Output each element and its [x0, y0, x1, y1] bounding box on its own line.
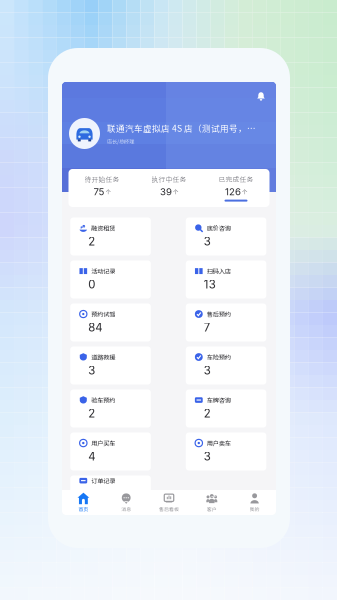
button[interactable]: 车牌咨询 — [186, 389, 266, 427]
button[interactable]: 执行中任务 — [135, 169, 202, 207]
staticText: 售后预约 — [207, 309, 231, 319]
staticText: 已完成任务 — [218, 174, 253, 184]
staticText: 126 — [225, 186, 241, 198]
staticText: 2 — [88, 235, 95, 248]
staticText: 底价咨询 — [207, 223, 231, 233]
staticText: 7 — [204, 321, 210, 334]
button[interactable]: 活动记录 — [70, 260, 151, 298]
button[interactable]: 售后预约 — [186, 303, 266, 341]
staticText: 75 — [93, 186, 104, 198]
staticText: 84 — [88, 321, 102, 334]
staticText: 个 — [105, 188, 110, 196]
button[interactable]: 预约试驾 — [70, 303, 151, 341]
staticText: 首页 — [78, 505, 88, 512]
staticText: 39 — [160, 186, 172, 198]
staticText: 联通汽车虚拟店 4S 店（测试用号，… — [107, 122, 256, 134]
staticText: 道路救援 — [91, 352, 115, 362]
button[interactable]: 首页 — [62, 490, 105, 515]
staticText: 用户买车 — [91, 438, 115, 448]
staticText: 消息 — [121, 505, 131, 512]
staticText: 扫码入店 — [207, 266, 231, 276]
staticText: 预约试驾 — [91, 309, 115, 319]
staticText: 13 — [204, 278, 216, 291]
button[interactable]: 融资租赁 — [70, 217, 151, 255]
staticText: 融资租赁 — [91, 223, 115, 233]
staticText: 3 — [204, 235, 211, 248]
staticText: 店长/总经理 — [107, 137, 134, 145]
staticText: 验车预约 — [91, 395, 115, 405]
staticText: 执行中任务 — [151, 174, 186, 184]
staticText: 2 — [88, 407, 95, 420]
staticText: 个 — [173, 188, 178, 196]
button[interactable]: 客户 — [190, 490, 233, 515]
staticText: 我的 — [250, 505, 260, 512]
button[interactable]: 用户买车 — [70, 432, 151, 470]
staticText: 待开始任务 — [84, 174, 119, 184]
staticText: 3 — [88, 364, 95, 377]
button[interactable]: 已完成任务 — [202, 169, 269, 207]
staticText: 客户 — [207, 505, 217, 512]
button[interactable]: 车险预约 — [186, 346, 266, 384]
staticText: 3 — [204, 364, 211, 377]
button[interactable]: 道路救援 — [70, 346, 151, 384]
button[interactable]: 用户卖车 — [186, 432, 266, 470]
staticText: 4 — [88, 450, 95, 463]
button[interactable]: 我的 — [233, 490, 276, 515]
staticText: 用户卖车 — [207, 438, 231, 448]
staticText: 0 — [88, 278, 95, 291]
staticText: 车牌咨询 — [207, 395, 231, 405]
button[interactable]: 底价咨询 — [186, 217, 266, 255]
button[interactable]: 消息 — [105, 490, 148, 515]
button[interactable]: 验车预约 — [70, 389, 151, 427]
staticText: 3 — [204, 450, 211, 463]
button[interactable]: 通知 — [252, 87, 270, 105]
button[interactable]: 扫码入店 — [186, 260, 266, 298]
button[interactable]: 待开始任务 — [68, 169, 135, 207]
staticText: 个 — [242, 188, 247, 196]
staticText: 2 — [204, 407, 211, 420]
staticText: 订单记录 — [91, 476, 115, 485]
staticText: 活动记录 — [91, 266, 115, 276]
staticText: 车险预约 — [207, 352, 231, 362]
button[interactable]: 售后看板 — [148, 490, 190, 515]
button[interactable]: 订单记录 — [70, 475, 151, 495]
staticText: 售后看板 — [159, 505, 179, 512]
